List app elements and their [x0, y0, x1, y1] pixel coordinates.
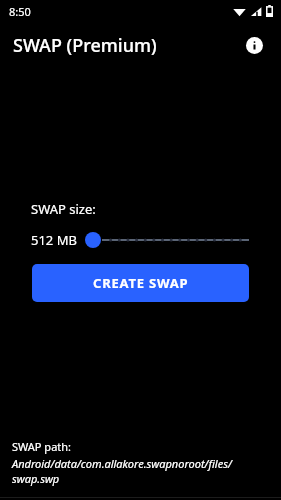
- staticText: SWAP size:: [31, 200, 96, 218]
- staticText: SWAP path:: [12, 439, 72, 454]
- button[interactable]: Info: [239, 30, 269, 60]
- button[interactable]: CREATE SWAP: [32, 264, 249, 302]
- staticText: CREATE SWAP: [93, 274, 189, 292]
- staticText: 8:50: [9, 4, 31, 19]
- staticText: 512 MB: [31, 231, 77, 249]
- staticText: SWAP (Premium): [13, 33, 157, 58]
- staticText: Android/data/com.allakore.swapnoroot/fil…: [12, 456, 269, 486]
- button[interactable]: [85, 229, 251, 251]
